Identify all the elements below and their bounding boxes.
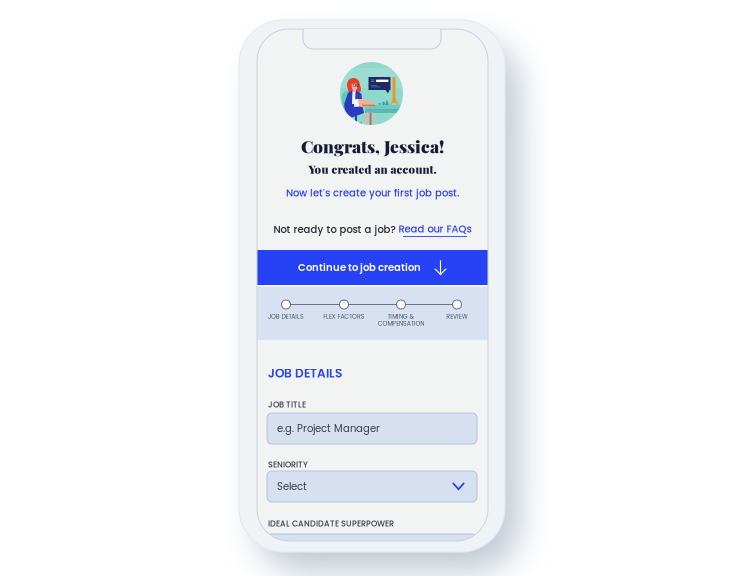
staticText: Continue to job creation bbox=[298, 260, 421, 274]
button[interactable]: Select bbox=[267, 471, 477, 502]
staticText: SENIORITY bbox=[268, 459, 308, 470]
staticText: Now let's create your first job post. bbox=[286, 186, 459, 200]
button[interactable]: e.g. Project Manager bbox=[267, 413, 477, 444]
staticText: JOB TITLE bbox=[268, 399, 306, 410]
staticText: TIMING & bbox=[387, 312, 415, 321]
staticText: Not ready to post a job? bbox=[273, 222, 395, 236]
staticText: e.g. Project Manager bbox=[277, 421, 380, 435]
staticText: JOB DETAILS bbox=[268, 312, 304, 321]
button[interactable]: Continue to job creation bbox=[257, 250, 488, 285]
staticText: FLEX FACTORS bbox=[323, 312, 365, 321]
staticText: Select bbox=[277, 479, 307, 493]
staticText: IDEAL CANDIDATE SUPERPOWER bbox=[268, 518, 394, 529]
staticText: Congrats, Jessica! bbox=[301, 134, 444, 157]
staticText: REVIEW bbox=[446, 312, 468, 321]
staticText: Read our FAQs bbox=[398, 222, 471, 236]
staticText: COMPENSATION bbox=[378, 319, 424, 328]
button[interactable]: Read our FAQs bbox=[398, 222, 471, 237]
staticText: You created an account. bbox=[308, 161, 436, 176]
staticText: JOB DETAILS bbox=[268, 365, 342, 382]
